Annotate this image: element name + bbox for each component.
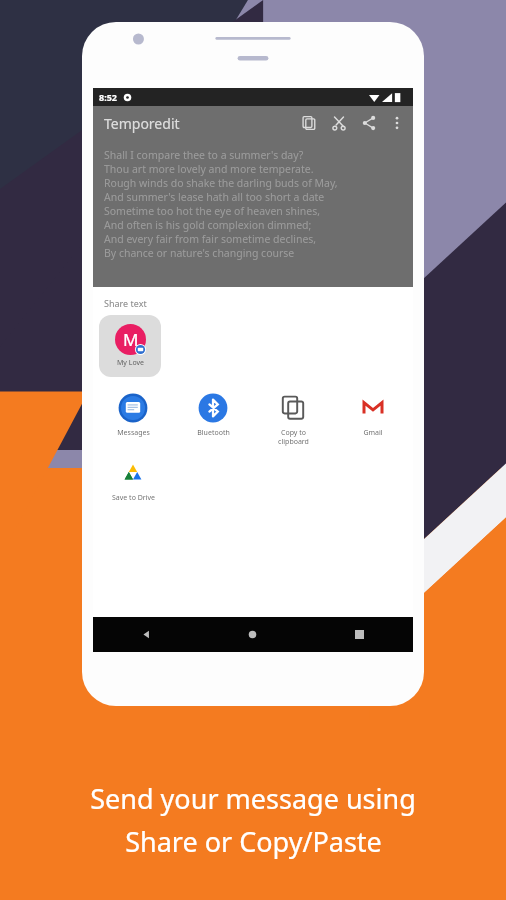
staticText: Messages [117,428,150,438]
button[interactable]: Bluetooth [173,389,253,442]
button[interactable]: Save to Drive [93,454,173,507]
button[interactable]: Recent apps [306,617,413,652]
staticText: M [123,328,139,351]
staticText: Copy to clipboard [278,428,309,446]
staticText: My Love [117,358,145,368]
staticText: And summer's lease hath all too short a … [104,190,325,204]
button[interactable]: More options [389,115,405,131]
staticText: Share or Copy/Paste [125,823,382,860]
staticText: Shall I compare thee to a summer's day? [104,148,304,162]
staticText: Rough winds do shake the darling buds of… [104,176,338,190]
staticText: Sometime too hot the eye of heaven shine… [104,204,321,218]
staticText: And often is his gold complexion dimmed; [104,218,312,232]
button[interactable]: M [99,315,161,377]
button[interactable]: Gmail [333,389,413,442]
button[interactable]: Cut [331,115,347,131]
staticText: Save to Drive [112,493,155,503]
button[interactable]: Copy [301,115,317,131]
staticText: Bluetooth [197,428,230,438]
staticText: Temporedit [104,114,180,133]
button[interactable]: Back [93,617,199,652]
staticText: Send your message using [90,780,416,817]
button[interactable]: Messages [93,389,173,442]
staticText: And every fair from fair sometime declin… [104,232,317,246]
button[interactable]: Share [361,115,377,131]
staticText: 8:52 [99,91,117,103]
staticText: Thou art more lovely and more temperate. [104,162,314,176]
button[interactable]: Copy to clipboard [253,389,333,450]
button[interactable]: Home [199,617,306,652]
staticText: Gmail [363,428,383,438]
staticText: By chance or nature's changing course [104,246,295,260]
staticText: Share text [104,297,147,309]
